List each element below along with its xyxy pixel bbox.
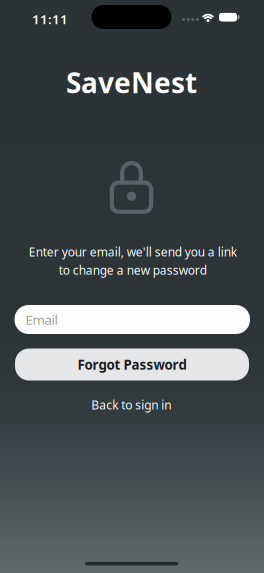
button[interactable]: Back to sign in [91,397,171,413]
staticText: Enter your email, we'll send you a link … [28,244,236,278]
staticText: SaveNest [66,64,197,101]
staticText: Email [25,311,57,328]
button[interactable]: Forgot Password [15,348,249,380]
staticText: 11:11 [32,10,68,28]
textField[interactable]: Email [25,311,250,328]
staticText: Back to sign in [91,397,171,413]
staticText: Forgot Password [77,356,186,373]
